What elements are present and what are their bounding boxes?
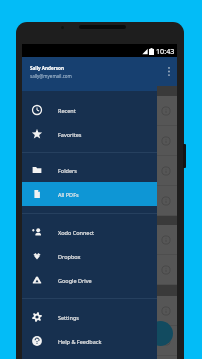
button[interactable] <box>22 255 177 285</box>
staticText: Recent <box>58 107 76 114</box>
button[interactable]: Google Drive <box>22 268 157 292</box>
staticText: Help & Feedback <box>58 338 102 345</box>
button[interactable] <box>22 296 177 326</box>
button[interactable]: Dropbox <box>22 244 157 268</box>
button[interactable] <box>22 225 177 255</box>
button[interactable]: Recent <box>22 98 157 122</box>
button[interactable]: Xodo Connect <box>22 220 157 244</box>
button[interactable]: Help & Feedback <box>22 329 157 353</box>
button[interactable] <box>22 126 177 156</box>
staticText: All PDFs <box>58 191 79 198</box>
button[interactable] <box>22 156 177 186</box>
button[interactable] <box>22 326 177 356</box>
staticText: Google Drive <box>58 277 92 284</box>
staticText: Sally Anderson <box>30 65 64 71</box>
staticText: Folders <box>58 167 77 174</box>
button[interactable]: Create <box>148 321 173 346</box>
button[interactable]: Folders <box>22 158 157 182</box>
staticText: Dropbox <box>58 253 81 260</box>
button[interactable]: Sally Anderson <box>22 57 157 91</box>
staticText: 10:43 <box>156 46 175 56</box>
staticText: Favorites <box>58 131 82 138</box>
button[interactable] <box>22 186 177 216</box>
button[interactable] <box>22 96 177 126</box>
staticText: Xodo Connect <box>58 229 95 236</box>
button[interactable]: All PDFs <box>22 182 157 206</box>
staticText: sally@myemail.com <box>30 73 72 79</box>
staticText: Settings <box>58 314 79 321</box>
button[interactable]: More options <box>161 57 177 86</box>
button[interactable]: Favorites <box>22 122 157 146</box>
button[interactable]: Settings <box>22 305 157 329</box>
